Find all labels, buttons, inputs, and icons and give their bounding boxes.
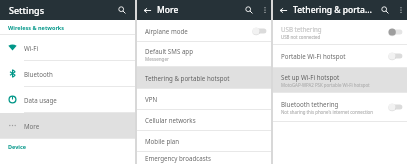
button[interactable]: Search — [113, 0, 131, 20]
staticText: VPN — [145, 95, 158, 103]
staticText: Bluetooth — [24, 70, 53, 78]
button[interactable]: Wi-Fi — [0, 35, 135, 60]
button[interactable]: Mobile plan — [137, 131, 271, 151]
staticText: Airplane mode — [145, 27, 188, 35]
button[interactable]: Data usage — [0, 87, 135, 112]
staticText: Emergency broadcasts — [145, 154, 211, 162]
staticText: Tethering & portable hotspot — [145, 74, 230, 82]
button[interactable]: Bluetooth tethering — [273, 93, 407, 121]
staticText: USB not connected — [281, 34, 321, 40]
button[interactable]: More — [0, 113, 135, 138]
staticText: Device — [8, 143, 27, 150]
button[interactable]: Search — [240, 0, 258, 20]
staticText: Tethering & portabl… — [293, 4, 376, 16]
button[interactable]: Toggle — [388, 26, 404, 38]
button[interactable]: Toggle — [252, 25, 268, 37]
staticText: Settings — [9, 4, 113, 16]
button[interactable]: Portable Wi-Fi hotspot — [273, 45, 407, 67]
button[interactable]: Back — [137, 0, 157, 20]
staticText: Mobile plan — [145, 137, 180, 145]
button[interactable]: More options — [258, 0, 271, 20]
button[interactable]: Set up Wi-Fi hotspot — [273, 68, 407, 92]
button[interactable]: Cellular networks — [137, 110, 271, 130]
staticText: Portable Wi-Fi hotspot — [281, 52, 346, 60]
button[interactable]: Search — [376, 0, 394, 20]
button[interactable]: Toggle — [388, 50, 404, 62]
staticText: USB tethering — [281, 25, 322, 33]
staticText: MotoGAP-WPA2 PSK portable Wi-Fi hotspot — [281, 82, 370, 88]
staticText: Not sharing this phone's internet connec… — [281, 109, 373, 115]
button[interactable]: Emergency broadcasts — [137, 152, 271, 164]
button[interactable]: Toggle — [388, 101, 404, 113]
staticText: Cellular networks — [145, 116, 196, 124]
staticText: Messenger — [145, 56, 169, 62]
button[interactable]: VPN — [137, 89, 271, 109]
staticText: Wireless & networks — [8, 24, 65, 31]
staticText: Set up Wi-Fi hotspot — [281, 73, 340, 81]
button[interactable]: USB tethering — [273, 20, 407, 44]
staticText: Wi-Fi — [24, 44, 39, 52]
staticText: More — [157, 4, 240, 16]
button[interactable]: Airplane mode — [137, 20, 271, 41]
staticText: Bluetooth tethering — [281, 100, 339, 108]
button[interactable]: Bluetooth — [0, 61, 135, 86]
button[interactable]: Back — [273, 0, 293, 20]
button[interactable]: Default SMS app — [137, 42, 271, 66]
staticText: Data usage — [24, 96, 57, 104]
button[interactable]: More options — [394, 0, 407, 20]
staticText: Default SMS app — [145, 47, 193, 55]
staticText: More — [24, 122, 40, 130]
button[interactable]: Tethering & portable hotspot — [137, 67, 271, 88]
